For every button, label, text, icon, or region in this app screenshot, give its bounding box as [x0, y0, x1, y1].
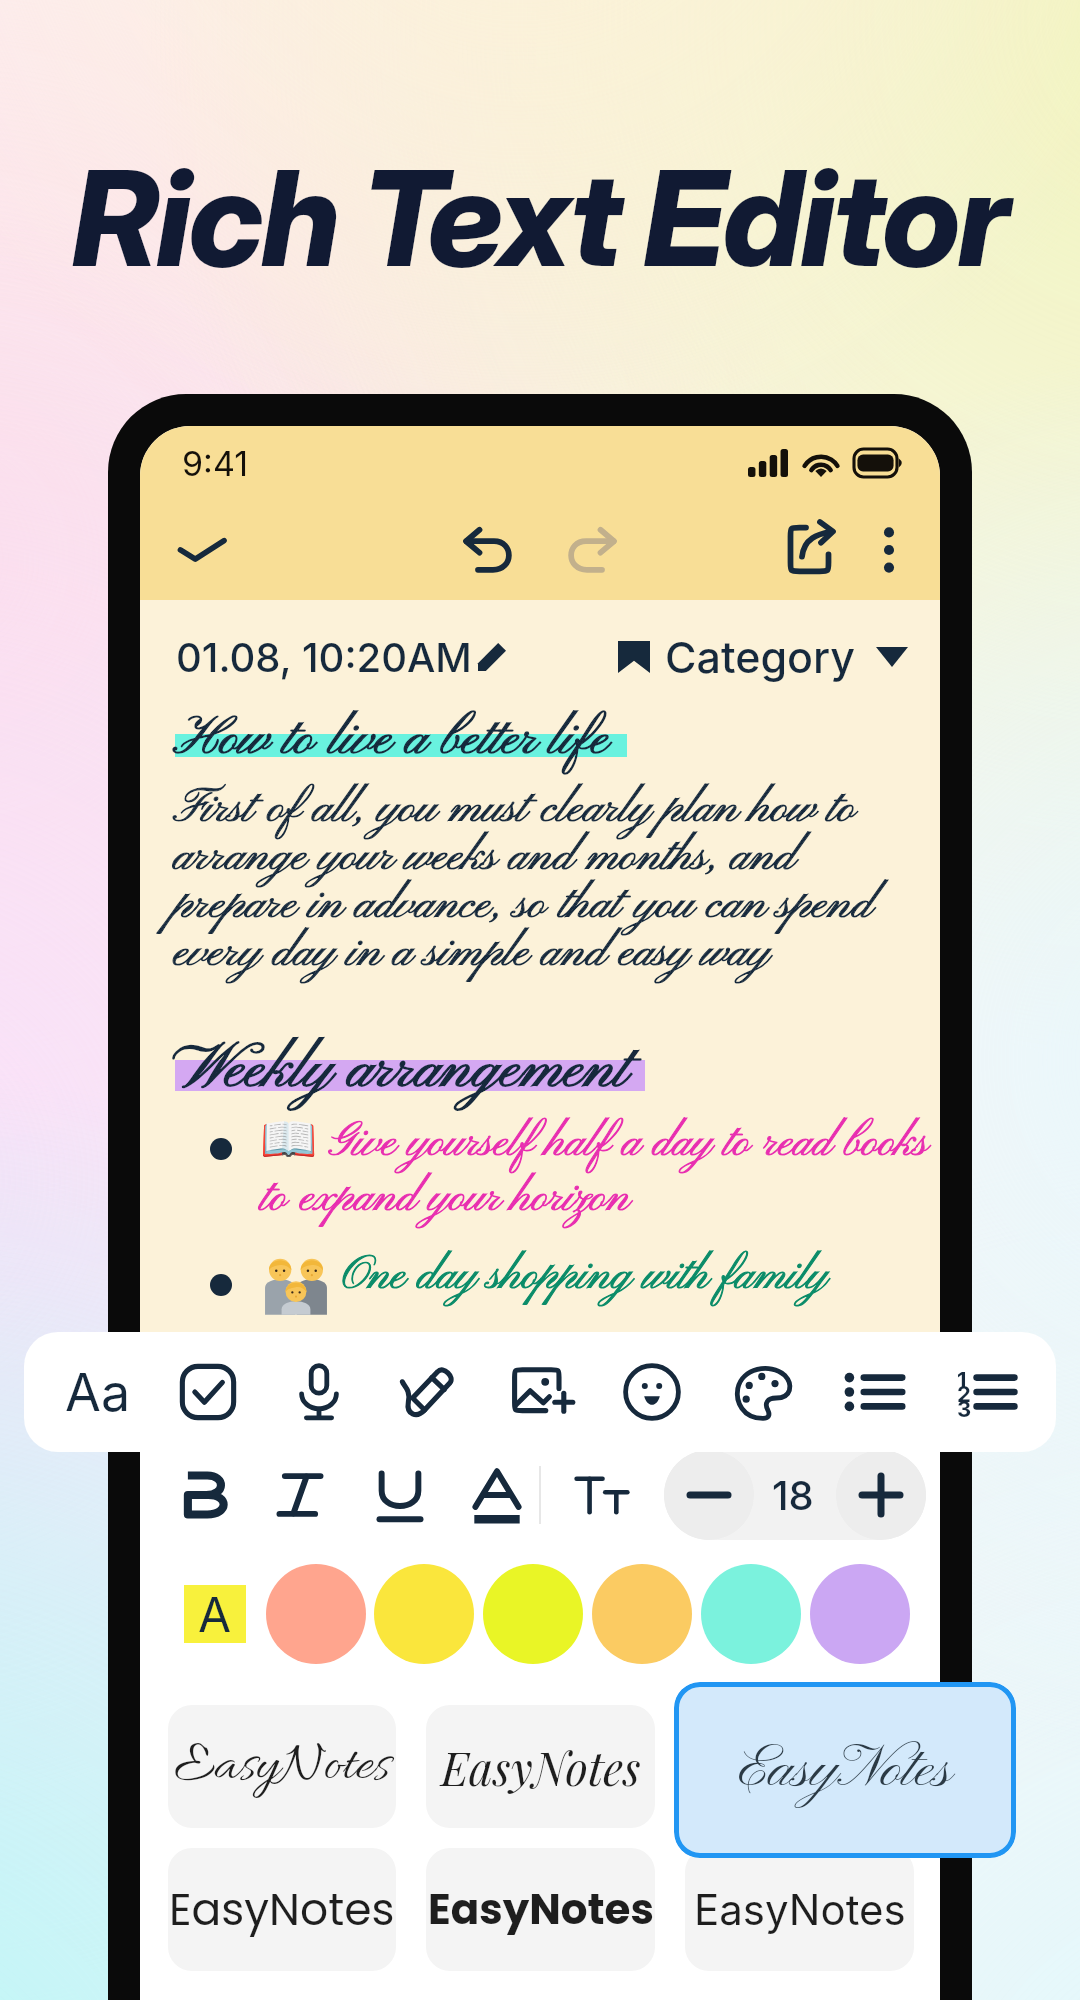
staticText: Rich Text Editor — [72, 138, 1008, 298]
button[interactable]: Decrease font size — [664, 1450, 754, 1540]
button[interactable]: Text size — [565, 1458, 639, 1532]
button[interactable]: Draw — [391, 1353, 469, 1431]
button[interactable]: Color swatch — [701, 1564, 801, 1664]
button[interactable]: More options — [867, 528, 911, 572]
button[interactable]: Undo — [463, 525, 513, 575]
staticText: How to live a better life — [173, 706, 609, 773]
button[interactable]: Highlight color — [172, 1571, 258, 1657]
button[interactable]: Color swatch — [592, 1564, 692, 1664]
button[interactable]: Underline — [363, 1458, 437, 1532]
staticText: EasyNotes — [169, 1879, 395, 1941]
button[interactable]: Checklist — [169, 1353, 247, 1431]
staticText: Weekly arrangement — [173, 1032, 628, 1109]
button[interactable]: Numbered list — [946, 1353, 1024, 1431]
staticText: 9:41 — [182, 443, 249, 484]
button[interactable]: Color swatch — [810, 1564, 910, 1664]
button[interactable]: Voice recording — [280, 1353, 358, 1431]
staticText: Weekly arrangement — [173, 1032, 628, 1109]
button[interactable]: Italic — [263, 1458, 337, 1532]
staticText: 2 — [957, 1381, 971, 1408]
button[interactable]: Font style — [60, 1354, 136, 1430]
button[interactable]: Text colour — [460, 1458, 534, 1532]
button[interactable]: Increase font size — [836, 1450, 926, 1540]
staticText: EasyNotes — [428, 1880, 654, 1939]
button[interactable]: EasyNotes — [426, 1705, 655, 1828]
staticText: A — [198, 1585, 232, 1643]
staticText: 18 — [772, 1471, 814, 1519]
button[interactable]: Share — [784, 522, 840, 578]
staticText: First of all, you must clearly plan how … — [173, 780, 913, 984]
staticText: 3 — [957, 1396, 972, 1423]
button[interactable]: Color swatch — [374, 1564, 474, 1664]
staticText: One day shopping with family — [342, 1248, 828, 1305]
staticText: One day shopping with family — [342, 1248, 828, 1305]
button[interactable]: EasyNotes — [168, 1705, 396, 1828]
staticText: 01.08, 10:20AM — [176, 633, 472, 681]
staticText: Category — [665, 631, 856, 683]
button[interactable]: Redo — [567, 525, 617, 575]
button[interactable]: Color palette — [724, 1353, 802, 1431]
staticText: 📖 Give yourself half a day to read books… — [260, 1112, 936, 1228]
staticText: EasyNotes — [694, 1884, 906, 1935]
staticText: First of all, you must clearly plan how … — [173, 780, 913, 984]
staticText: EasyNotes — [739, 1733, 952, 1808]
button[interactable]: EasyNotes — [426, 1848, 655, 1971]
button[interactable]: Bullet list — [835, 1353, 913, 1431]
staticText: EasyNotes — [174, 1732, 390, 1802]
button[interactable]: EasyNotes — [168, 1848, 396, 1971]
button[interactable]: Done — [178, 526, 226, 574]
button[interactable]: EasyNotes — [674, 1682, 1016, 1858]
staticText: Aa — [65, 1361, 131, 1424]
staticText: 📖 Give yourself half a day to read books… — [260, 1112, 936, 1228]
button[interactable]: Bold — [166, 1458, 240, 1532]
button[interactable]: Emoji — [613, 1353, 691, 1431]
button[interactable]: Color swatch — [266, 1564, 366, 1664]
button[interactable]: EasyNotes — [685, 1848, 914, 1971]
button[interactable]: Color swatch — [483, 1564, 583, 1664]
button[interactable]: Category — [617, 631, 908, 683]
button[interactable]: Insert image — [502, 1353, 580, 1431]
staticText: 1 — [957, 1367, 967, 1394]
staticText: EasyNotes — [441, 1736, 641, 1797]
staticText: How to live a better life — [173, 706, 609, 773]
